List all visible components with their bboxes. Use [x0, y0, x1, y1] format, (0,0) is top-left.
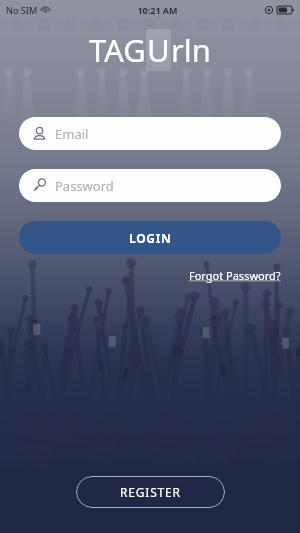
staticText: REGISTER: [120, 484, 181, 500]
staticText: Email: [55, 125, 89, 143]
button[interactable]: Email: [19, 117, 281, 150]
staticText: No SIM: [6, 4, 38, 16]
staticText: rln: [171, 29, 211, 71]
staticText: Forgot Password?: [189, 268, 281, 283]
staticText: LOGIN: [129, 230, 172, 246]
staticText: TAG: [89, 29, 146, 71]
button[interactable]: REGISTER: [76, 476, 225, 508]
staticText: U: [147, 29, 170, 71]
button[interactable]: Password: [19, 169, 281, 202]
button[interactable]: Forgot Password?: [189, 268, 281, 283]
staticText: Password: [55, 177, 114, 195]
staticText: 10:21 AM: [137, 4, 178, 16]
button[interactable]: LOGIN: [19, 221, 281, 254]
